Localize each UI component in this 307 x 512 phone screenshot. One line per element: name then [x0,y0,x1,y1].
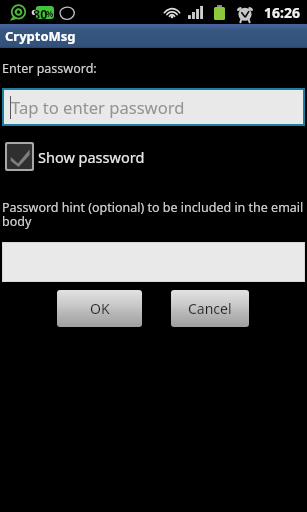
staticText: Enter password: [2,60,97,77]
staticText: 80 [33,6,48,19]
staticText: Cancel [188,299,232,318]
staticText: Show password [38,147,145,167]
staticText: % [46,8,54,19]
staticText: Tap to enter password [11,96,185,119]
button[interactable]: Cancel [171,290,249,327]
button[interactable]: OK [57,290,142,327]
staticText: CryptoMsg [5,27,76,45]
staticText: OK [90,299,110,318]
button[interactable]: Show password [5,142,145,171]
button[interactable]: Tap to enter password [4,90,303,124]
staticText: Password hint (optional) to be included … [2,199,305,230]
staticText: 16:26 [264,3,300,22]
